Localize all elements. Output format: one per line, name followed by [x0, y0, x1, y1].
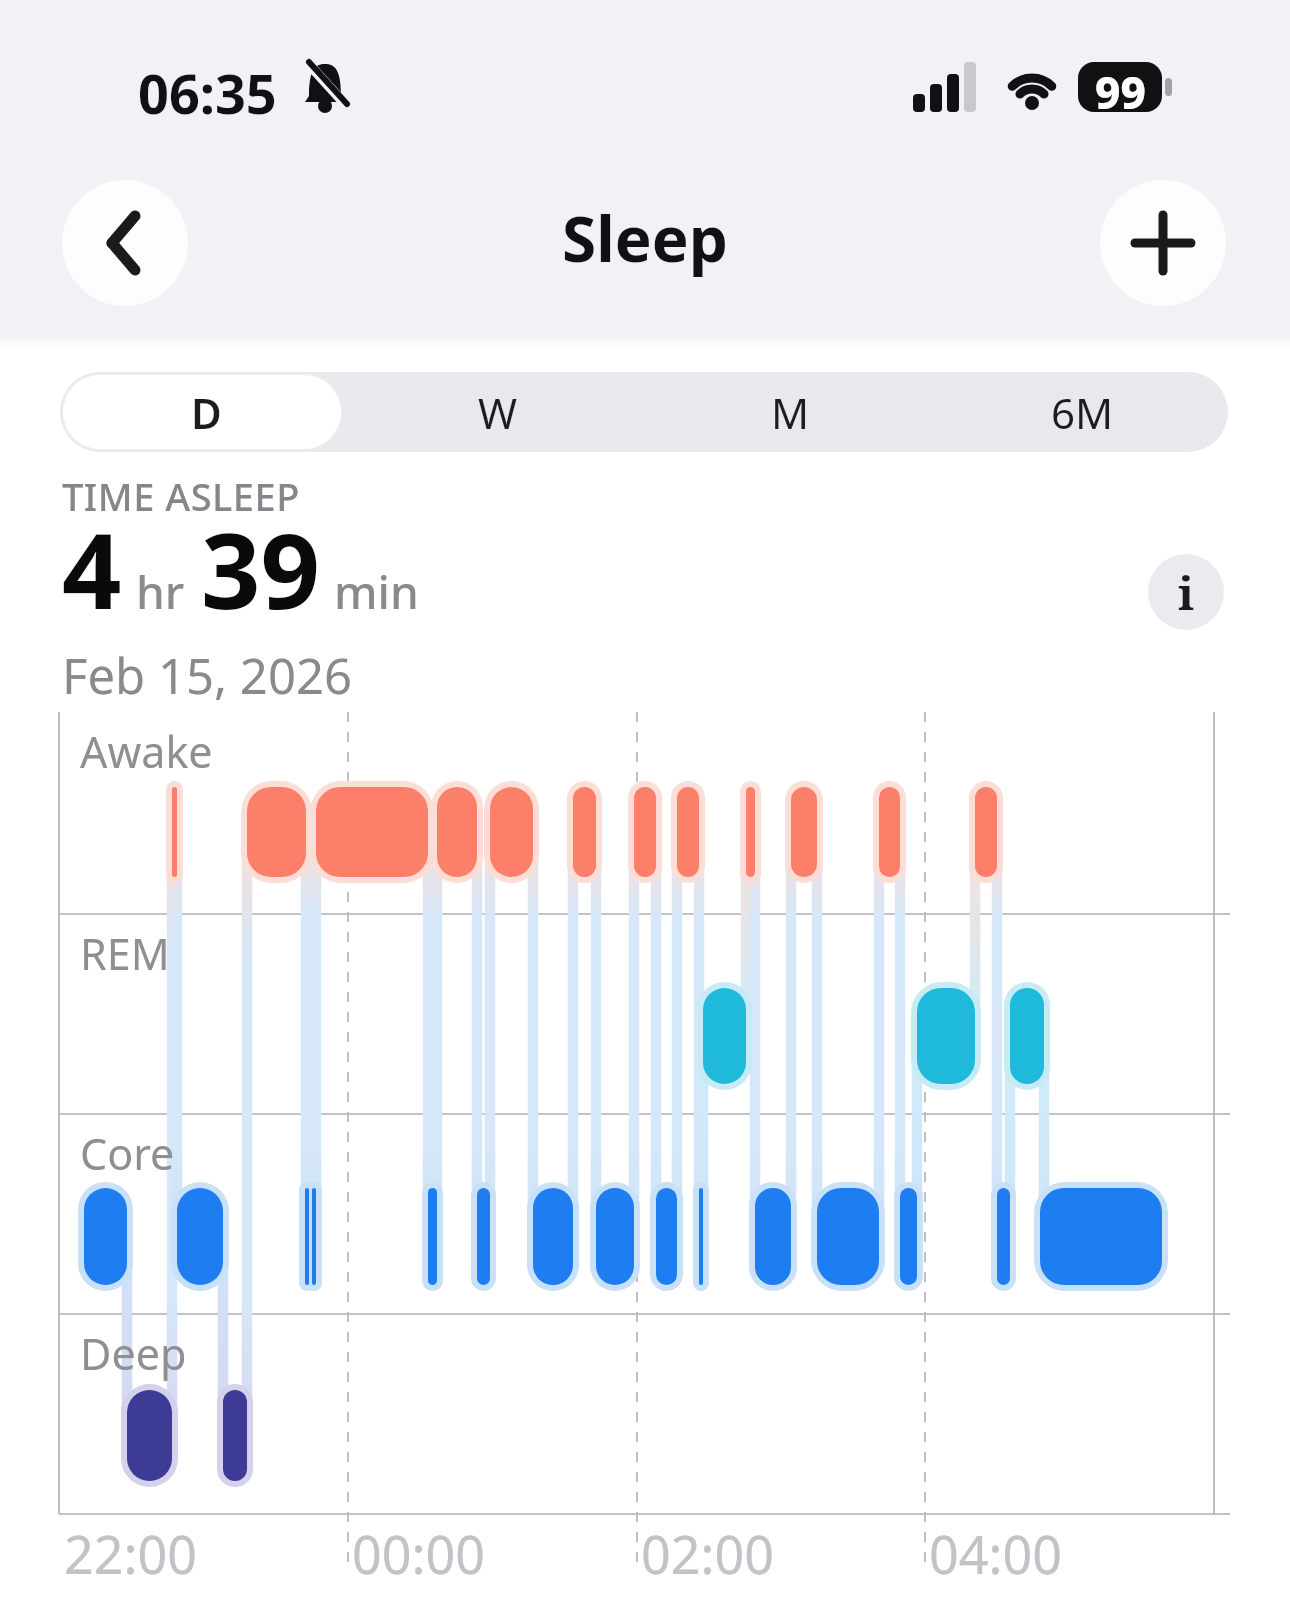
staticText: M	[771, 384, 810, 441]
staticText: 04:00	[929, 1518, 1062, 1589]
staticText: Deep	[80, 1324, 187, 1383]
staticText: i	[1178, 561, 1195, 624]
staticText: 6M	[1051, 384, 1114, 441]
staticText: D	[191, 384, 222, 441]
staticText: hr	[136, 560, 185, 623]
staticText: 22:00	[64, 1518, 197, 1589]
staticText: 02:00	[641, 1518, 774, 1589]
staticText: 00:00	[352, 1518, 485, 1589]
button[interactable]	[1100, 180, 1226, 306]
button[interactable]: i	[1148, 554, 1224, 630]
staticText: 06:35	[138, 56, 277, 130]
staticText: 39	[201, 498, 320, 640]
staticText: Awake	[80, 722, 213, 781]
button[interactable]	[62, 180, 188, 306]
staticText: W	[478, 384, 518, 441]
staticText: TIME ASLEEP	[62, 470, 300, 522]
staticText: Feb 15, 2026	[62, 642, 352, 709]
button[interactable]: M	[644, 372, 936, 452]
staticText: Sleep	[562, 196, 728, 280]
staticText: min	[334, 560, 419, 623]
staticText: REM	[80, 924, 170, 983]
button[interactable]: D	[60, 372, 352, 452]
button[interactable]: W	[352, 372, 644, 452]
staticText: Core	[80, 1124, 175, 1183]
button[interactable]: 6M	[936, 372, 1228, 452]
staticText: 4	[62, 498, 122, 640]
staticText: 99	[1095, 62, 1146, 112]
